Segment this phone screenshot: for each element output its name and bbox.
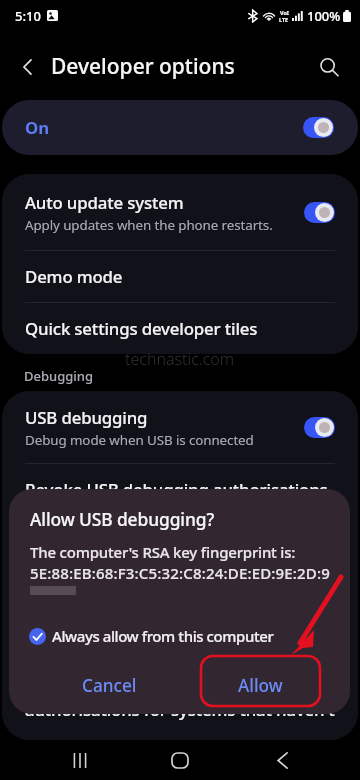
staticText: Auto update system — [25, 191, 184, 214]
button[interactable]: Always allow from this computer — [9, 623, 350, 649]
button[interactable]: Disable automatic revocation of adb — [2, 666, 358, 724]
staticText: Revoke USB debugging authorisations — [25, 478, 328, 501]
button[interactable]: Home — [156, 740, 204, 780]
button[interactable]: Quick settings developer tiles — [2, 303, 358, 354]
button[interactable] — [304, 417, 335, 438]
button[interactable]: Wireless debugging — [2, 516, 358, 588]
button[interactable]: Cancel — [49, 660, 169, 710]
button[interactable]: Back — [9, 48, 47, 86]
staticText: The computer's RSA key fingerprint is: — [30, 542, 296, 562]
staticText: Demo mode — [25, 265, 123, 288]
button[interactable]: On — [2, 100, 358, 155]
staticText: On — [25, 116, 50, 139]
button[interactable]: Demo mode — [2, 251, 358, 302]
staticText: Bug report shortcut — [25, 606, 182, 629]
staticText: Developer options — [51, 52, 235, 81]
staticText: Allow — [238, 674, 283, 697]
staticText: VoI — [280, 9, 289, 16]
staticText: Debug mode when Wi-Fi is connected — [25, 556, 259, 574]
staticText: USB debugging — [25, 406, 148, 429]
staticText: LTE — [279, 16, 289, 23]
button[interactable] — [303, 117, 334, 138]
staticText: 100% — [307, 7, 341, 25]
staticText: Debug mode when USB is connected — [25, 431, 254, 449]
button[interactable] — [304, 202, 335, 223]
staticText: Disable automatic revocation of adb — [25, 675, 310, 698]
button[interactable]: Auto update system — [2, 174, 358, 250]
staticText: Allow USB debugging? — [30, 507, 215, 531]
staticText: Debugging — [24, 367, 94, 385]
staticText: Cancel — [82, 674, 137, 697]
staticText: Apply updates when the phone restarts. — [25, 216, 273, 234]
button[interactable] — [304, 617, 335, 638]
staticText: 5:10 — [15, 7, 41, 25]
button[interactable]: Back — [258, 740, 306, 780]
button[interactable]: Search — [310, 48, 348, 86]
button[interactable]: Bug report shortcut — [2, 589, 358, 665]
button[interactable] — [306, 683, 337, 704]
button[interactable]: USB debugging — [2, 391, 358, 463]
button[interactable]: Revoke USB debugging authorisations — [2, 464, 358, 515]
staticText: 5E:88:EB:68:F3:C5:32:C8:24:DE:ED:9E:2D:9 — [30, 563, 330, 583]
staticText: Wireless debugging — [25, 531, 182, 554]
staticText: Always allow from this computer — [52, 626, 274, 646]
staticText: Show a button in the power menu — [25, 631, 236, 649]
staticText: technastic.com — [125, 348, 235, 370]
button[interactable]: Recents — [56, 740, 104, 780]
staticText: authorisations for systems that haven't — [25, 698, 335, 721]
staticText: Quick settings developer tiles — [25, 317, 258, 340]
button[interactable]: Allow — [200, 660, 320, 710]
